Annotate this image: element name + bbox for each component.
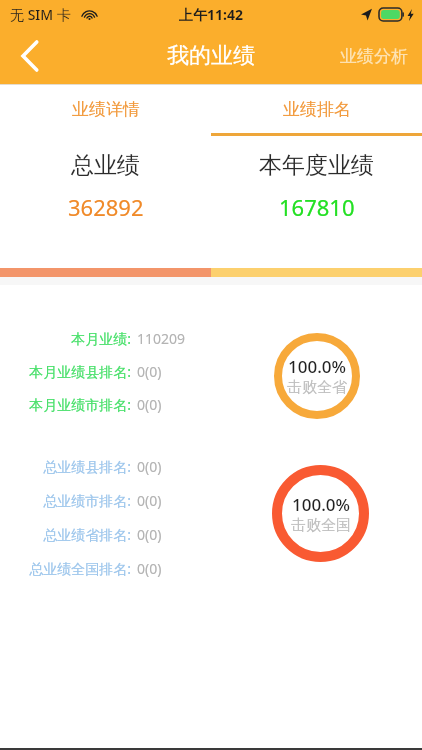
staticText: 击败全国 [291,516,351,535]
button[interactable]: 返回 [0,28,62,84]
staticText: 0(0) [137,362,162,381]
staticText: 业绩分析 [340,46,408,67]
staticText: 业绩详情 [72,99,140,120]
staticText: 总业绩县排名: [43,457,131,476]
staticText: 0(0) [137,491,162,510]
staticText: 本月业绩: [71,329,131,348]
staticText: 110209 [137,329,186,348]
staticText: 总业绩省排名: [43,525,131,544]
staticText: 我的业绩 [167,42,255,70]
staticText: 0(0) [137,457,162,476]
staticText: 业绩排名 [283,99,351,120]
staticText: 击败全省 [287,378,347,397]
staticText: 362892 [68,192,144,222]
staticText: 本年度业绩 [259,151,374,180]
staticText: 总业绩全国排名: [29,559,131,578]
button[interactable]: 业绩详情 [0,85,211,133]
staticText: 上午11:42 [179,5,243,24]
staticText: 167810 [279,192,355,222]
staticText: 总业绩市排名: [43,491,131,510]
staticText: 本月业绩县排名: [29,362,131,381]
button[interactable]: 业绩分析 [326,28,422,84]
staticText: 100.0% [292,493,351,516]
staticText: 100.0% [288,355,347,378]
button[interactable]: 业绩排名 [211,85,422,133]
staticText: 总业绩 [71,151,140,180]
staticText: 0(0) [137,525,162,544]
staticText: 0(0) [137,395,162,414]
staticText: 本月业绩市排名: [29,395,131,414]
staticText: 无 SIM 卡 [10,5,71,24]
staticText: 0(0) [137,559,162,578]
